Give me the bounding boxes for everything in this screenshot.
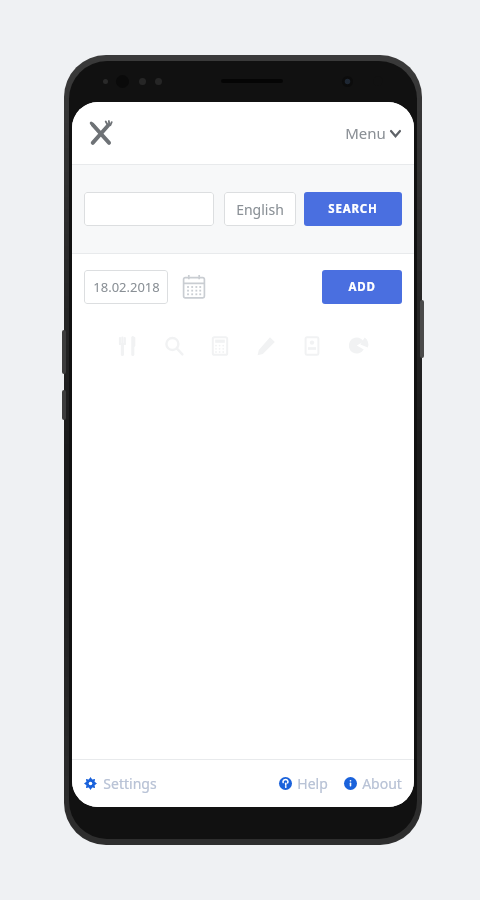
button[interactable]: Search: [159, 331, 189, 361]
button[interactable]: Settings: [80, 768, 161, 799]
staticText: Menu: [345, 123, 386, 143]
button[interactable]: Home: [78, 111, 122, 155]
button[interactable]: Meals: [113, 331, 143, 361]
button[interactable]: Calculator: [205, 331, 235, 361]
button[interactable]: Menu: [339, 117, 406, 149]
staticText: English: [236, 200, 284, 219]
staticText: 18.02.2018: [93, 278, 160, 296]
button[interactable]: Notes: [297, 331, 327, 361]
staticText: SEARCH: [328, 201, 378, 217]
button[interactable]: About: [340, 768, 406, 799]
button[interactable]: Search field: [84, 192, 214, 226]
staticText: About: [362, 774, 402, 793]
button[interactable]: 18.02.2018: [84, 270, 168, 304]
staticText: Settings: [103, 774, 157, 793]
staticText: Help: [297, 774, 328, 793]
button[interactable]: English: [224, 192, 296, 226]
staticText: ADD: [348, 279, 376, 295]
button[interactable]: Help: [275, 768, 332, 799]
button[interactable]: SEARCH: [304, 192, 402, 226]
button[interactable]: ADD: [322, 270, 402, 304]
button[interactable]: Statistics: [343, 331, 373, 361]
button[interactable]: Pick date: [178, 271, 210, 303]
button[interactable]: Edit: [251, 331, 281, 361]
